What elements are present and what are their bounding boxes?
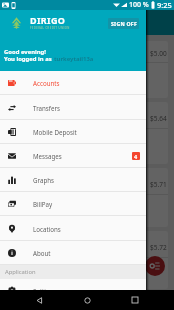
staticText: Messages: [33, 152, 62, 160]
staticText: You logged in as: [4, 55, 54, 63]
button[interactable]: Home: [78, 291, 96, 309]
staticText: $5.00: [150, 49, 167, 58]
button[interactable]: Mobile Deposit: [0, 120, 146, 144]
staticText: $5.71: [150, 180, 167, 189]
staticText: Accounts: [33, 79, 60, 87]
button[interactable]: New message: [145, 256, 165, 276]
staticText: Locations: [33, 225, 61, 233]
button[interactable]: $5.00: [6, 41, 168, 98]
staticText: Good evening!: [4, 48, 46, 56]
staticText: Transfers: [33, 104, 60, 112]
button[interactable]: Graphs: [0, 168, 146, 192]
button[interactable]: Messages: [0, 144, 146, 168]
staticText: Settings: [33, 287, 57, 295]
staticText: Mobile Deposit: [33, 128, 77, 136]
button[interactable]: BillPay: [0, 192, 146, 216]
button[interactable]: Settings: [0, 279, 146, 303]
staticText: $5.64: [150, 114, 167, 123]
button[interactable]: About: [0, 241, 146, 265]
button[interactable]: Transfers: [0, 95, 146, 120]
staticText: About: [33, 249, 51, 257]
button[interactable]: $5.72: [6, 231, 168, 289]
button[interactable]: Recent apps: [126, 291, 144, 309]
staticText: DIRIGO: [30, 14, 66, 26]
staticText: turkeytail13a: [54, 55, 94, 63]
button[interactable]: Locations: [0, 216, 146, 241]
button[interactable]: $5.71: [6, 168, 168, 227]
staticText: $5.72: [150, 243, 167, 252]
staticText: BillPay: [33, 200, 53, 208]
button[interactable]: SIGN OFF: [108, 18, 139, 29]
staticText: FEDERAL CREDIT UNION: [30, 26, 70, 30]
staticText: 9:25: [157, 0, 172, 10]
staticText: SIGN OFF: [111, 20, 137, 27]
staticText: 100 %: [129, 0, 149, 10]
staticText: Application: [5, 268, 36, 276]
button[interactable]: $5.64: [6, 102, 168, 164]
button[interactable]: Back: [30, 291, 48, 309]
staticText: Graphs: [33, 176, 54, 184]
button[interactable]: Accounts: [0, 71, 146, 95]
staticText: 4: [134, 153, 138, 160]
